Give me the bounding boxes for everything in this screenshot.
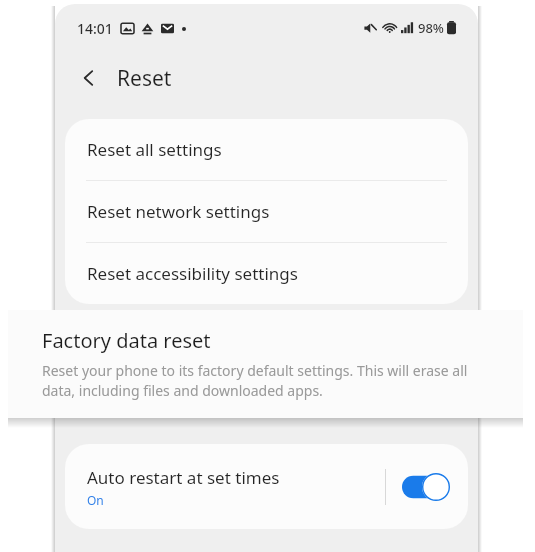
button[interactable]: Auto restart at set times toggle xyxy=(400,465,452,509)
staticText: Reset your phone to its factory default … xyxy=(42,361,497,401)
button[interactable]: Auto restart at set times xyxy=(65,444,468,529)
staticText: Reset xyxy=(117,64,172,93)
button[interactable]: Back xyxy=(69,58,109,98)
staticText: Reset network settings xyxy=(87,200,270,223)
staticText: Reset all settings xyxy=(87,138,222,161)
staticText: Auto restart at set times xyxy=(87,466,280,489)
staticText: 14:01 xyxy=(77,19,113,38)
staticText: 98% xyxy=(418,19,444,37)
staticText: Factory data reset xyxy=(42,327,211,354)
button[interactable]: Reset network settings xyxy=(65,181,468,242)
button[interactable]: Reset accessibility settings xyxy=(65,243,468,304)
staticText: Reset accessibility settings xyxy=(87,262,298,285)
staticText: On xyxy=(87,492,104,508)
button[interactable]: Reset all settings xyxy=(65,119,468,180)
